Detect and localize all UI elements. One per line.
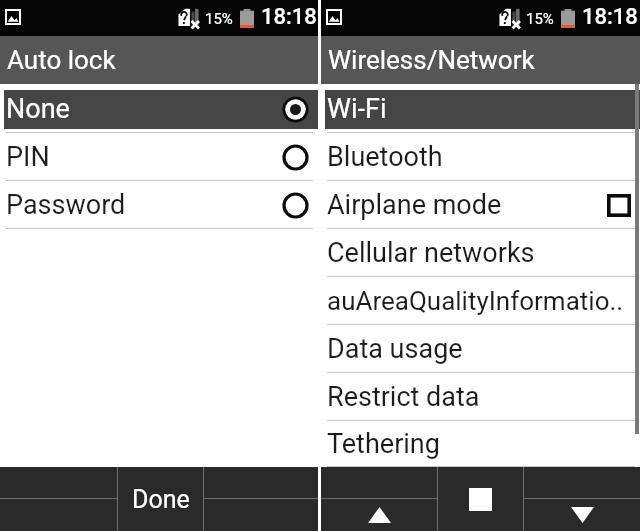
staticText: Bluetooth: [327, 141, 443, 173]
button[interactable]: Airplane mode: [321, 181, 640, 229]
button[interactable]: Home: [438, 467, 523, 531]
staticText: Wireless/Network: [328, 45, 535, 75]
staticText: auAreaQualityInformatio..: [327, 286, 624, 316]
button[interactable]: Password: [0, 181, 318, 229]
button[interactable]: Tethering: [321, 421, 640, 467]
staticText: Password: [6, 189, 126, 221]
staticText: 15%: [526, 10, 554, 28]
button[interactable]: Wi-Fi: [321, 85, 640, 133]
staticText: Restrict data: [327, 381, 480, 413]
button[interactable]: Scroll down: [524, 499, 640, 531]
staticText: 18:18: [261, 4, 317, 30]
staticText: None: [6, 93, 70, 125]
staticText: Data usage: [327, 333, 463, 365]
staticText: 18:18: [582, 4, 638, 30]
button[interactable]: Done: [118, 467, 203, 531]
staticText: Cellular networks: [327, 237, 535, 269]
button[interactable]: Scroll up: [321, 499, 437, 531]
button[interactable]: None: [0, 85, 318, 133]
staticText: 15%: [205, 10, 233, 28]
button[interactable]: Bluetooth: [321, 133, 640, 181]
staticText: Wi-Fi: [327, 93, 387, 125]
staticText: Airplane mode: [327, 189, 502, 221]
button[interactable]: PIN: [0, 133, 318, 181]
staticText: Done: [132, 485, 190, 514]
staticText: Auto lock: [7, 45, 116, 75]
staticText: PIN: [6, 141, 50, 173]
button[interactable]: Cellular networks: [321, 229, 640, 277]
button[interactable]: Restrict data: [321, 373, 640, 421]
staticText: Tethering: [327, 428, 440, 460]
button[interactable]: auAreaQualityInformatio..: [321, 277, 640, 325]
button[interactable]: Data usage: [321, 325, 640, 373]
